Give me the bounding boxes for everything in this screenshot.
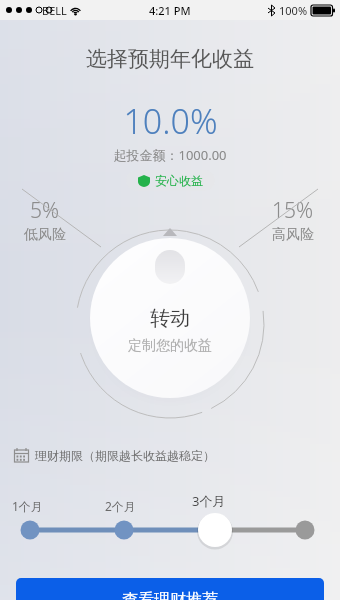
staticText: 15% [272,196,314,225]
button[interactable]: 安心收益 [126,170,215,191]
staticText: BELL [42,3,67,18]
staticText: 100% [279,3,308,18]
staticText: 理财期限（期限越长收益越稳定） [35,448,215,463]
staticText: 5% [30,196,60,225]
staticText: 4:21 PM [149,3,191,18]
staticText: 高风险 [272,226,314,244]
staticText: 2个月 [105,498,136,514]
button[interactable]: 理财期限选择 [0,512,340,552]
staticText: 起投金额：1000.00 [113,146,227,164]
staticText: 10.0% [123,98,218,144]
staticText: 定制您的收益 [128,337,212,355]
staticText: 低风险 [24,226,66,244]
staticText: 选择预期年化收益 [86,46,254,72]
staticText: 安心收益 [155,173,203,188]
staticText: 1个月 [12,498,43,514]
staticText: 查看理财推荐 [122,590,218,600]
staticText: 转动 [150,306,190,331]
staticText: 3个月 [192,492,226,510]
button[interactable]: 查看理财推荐 [16,578,324,600]
button[interactable]: 转动 定制您的收益 [90,238,250,398]
